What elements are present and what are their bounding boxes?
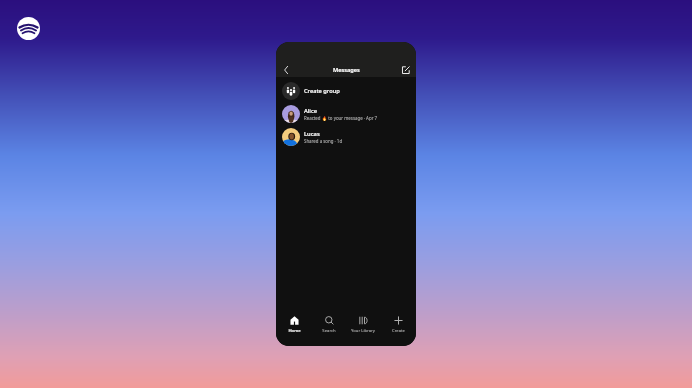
- staticText: Search: [322, 328, 336, 334]
- staticText: Create group: [304, 87, 340, 95]
- staticText: Create: [392, 328, 405, 334]
- button[interactable]: Lucas: [276, 128, 416, 146]
- button[interactable]: Back: [282, 66, 290, 74]
- button[interactable]: Alice: [276, 105, 416, 123]
- staticText: Reacted 🔥 to your message · Apr 7: [304, 115, 378, 121]
- staticText: Lucas: [304, 130, 320, 138]
- staticText: Your Library: [351, 328, 375, 334]
- staticText: Shared a song · 1d: [304, 138, 343, 144]
- button[interactable]: Create: [381, 310, 415, 334]
- button[interactable]: Search: [312, 310, 346, 334]
- staticText: Messages: [333, 66, 360, 74]
- button[interactable]: New message: [402, 66, 410, 74]
- staticText: Alice: [304, 107, 318, 115]
- staticText: Home: [288, 328, 301, 334]
- button[interactable]: Home: [277, 310, 311, 334]
- button[interactable]: Create group: [276, 82, 416, 100]
- button[interactable]: Your Library: [346, 310, 380, 334]
